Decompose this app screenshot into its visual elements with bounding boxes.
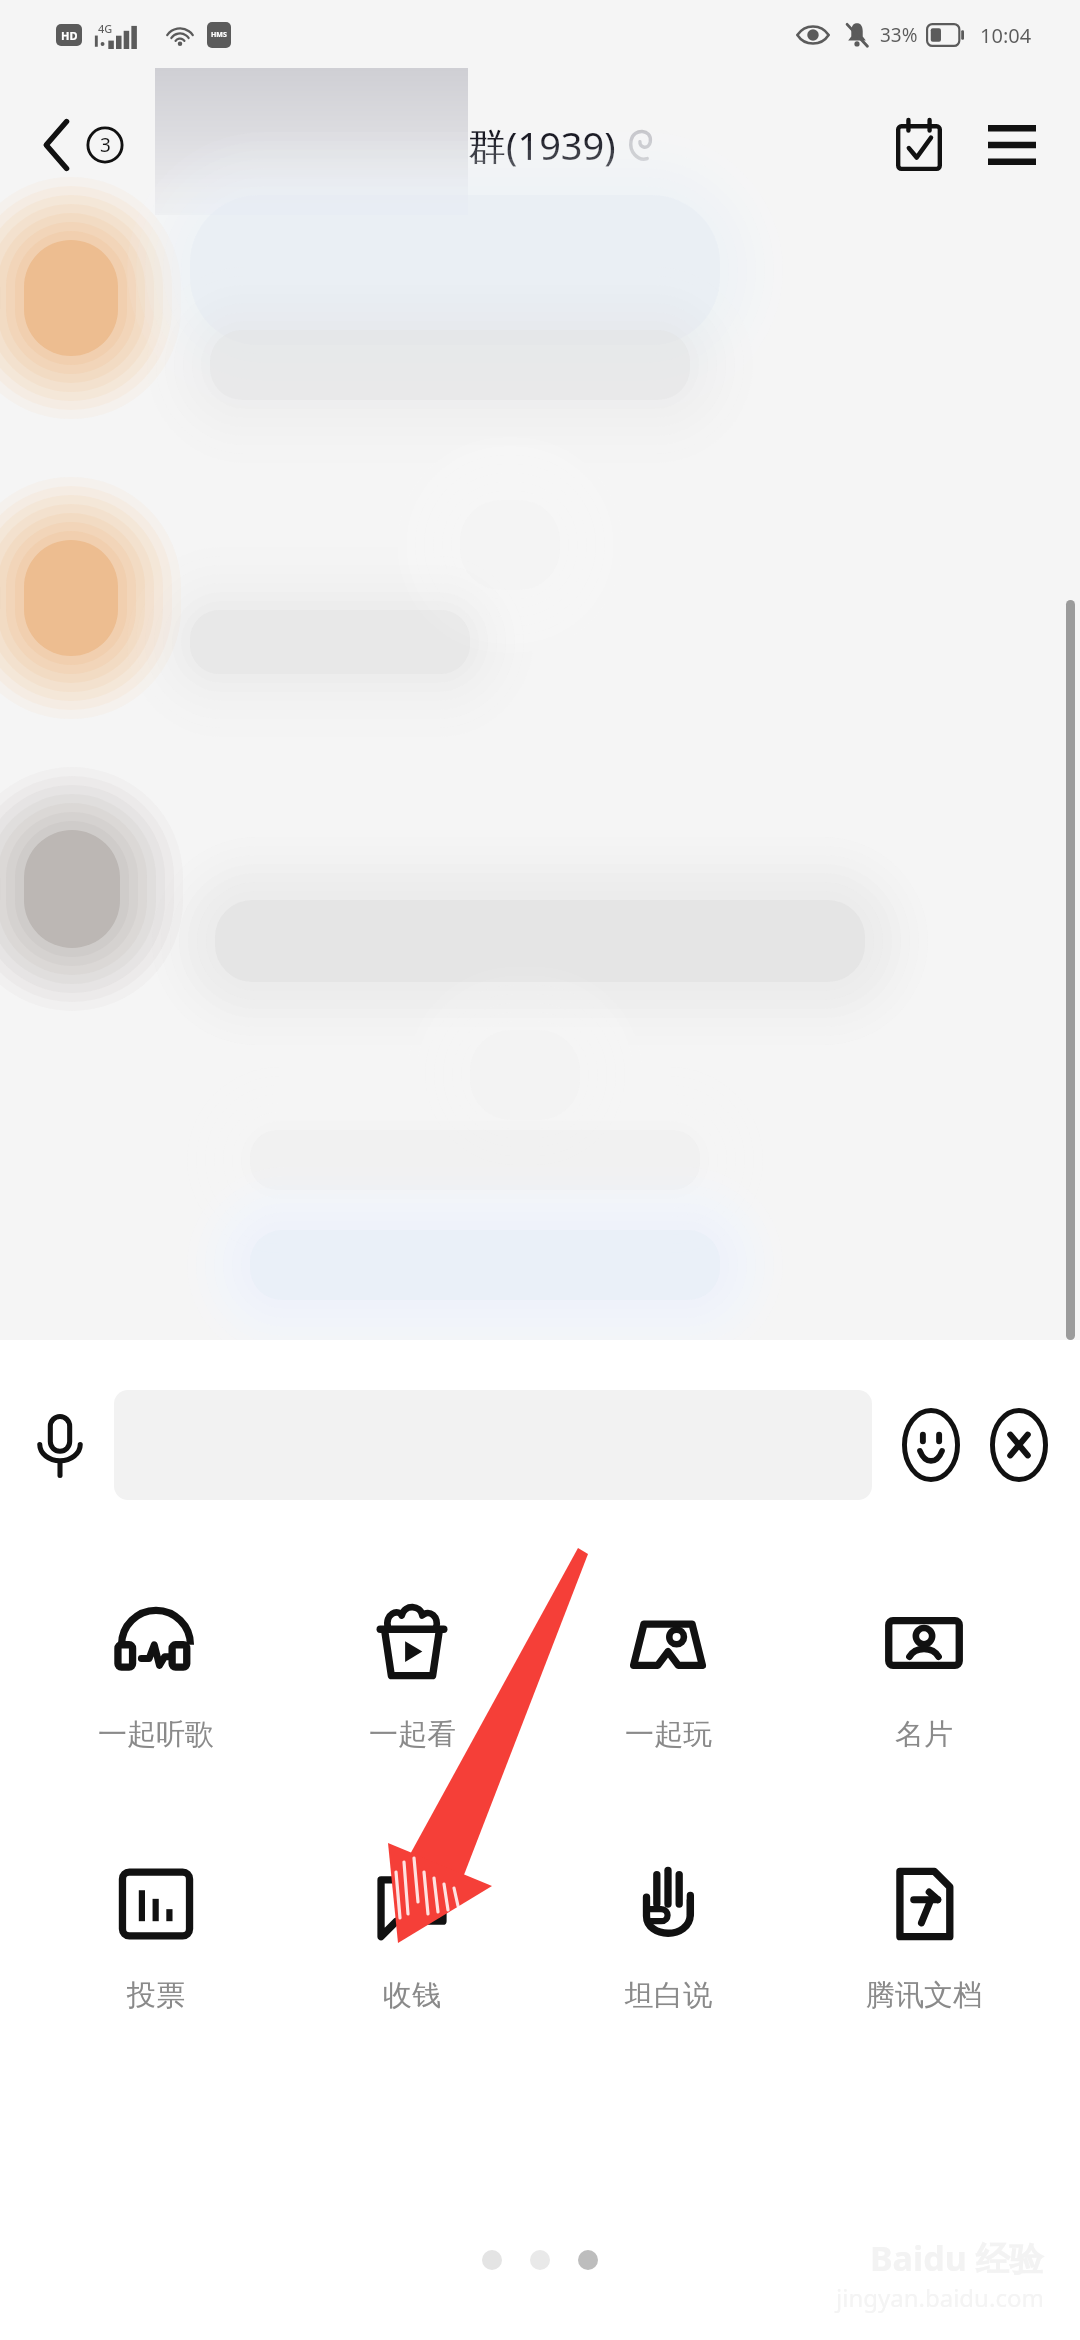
staticText: HD <box>61 28 78 43</box>
staticText: Baidu 经验 <box>870 2235 1044 2281</box>
button[interactable]: 收钱 <box>312 1851 512 2024</box>
staticText: 10:04 <box>980 22 1032 49</box>
button[interactable]: 一起玩 <box>568 1590 768 1763</box>
staticText: 坦白说 <box>625 1977 712 2014</box>
button[interactable]: Tasks <box>882 105 956 185</box>
staticText: 收钱 <box>383 1977 441 2014</box>
button[interactable]: 一起听歌 <box>56 1590 256 1763</box>
staticText: 名片 <box>895 1716 953 1753</box>
staticText: 一起玩 <box>625 1716 712 1753</box>
staticText: 投票 <box>127 1977 185 2014</box>
staticText: 一起听歌 <box>98 1716 214 1753</box>
button[interactable]: Close panel <box>978 1396 1060 1494</box>
staticText: 群(1939) <box>468 119 616 171</box>
staticText: 腾讯文档 <box>866 1977 982 2014</box>
staticText: jingyan.baidu.com <box>836 2281 1044 2314</box>
button[interactable]: 投票 <box>56 1851 256 2024</box>
button[interactable]: Emoji <box>890 1396 972 1494</box>
button[interactable]: Menu <box>974 111 1050 179</box>
staticText: HMS <box>211 30 227 40</box>
staticText: 4G <box>98 21 113 36</box>
button[interactable]: 腾讯文档 <box>824 1851 1024 2024</box>
button[interactable]: Back <box>34 109 132 181</box>
button[interactable]: 一起看 <box>312 1590 512 1763</box>
button[interactable]: Voice message <box>20 1396 100 1494</box>
button[interactable]: 名片 <box>824 1590 1024 1763</box>
staticText: 3 <box>100 132 111 158</box>
staticText: 一起看 <box>369 1716 456 1753</box>
staticText: 33% <box>880 22 918 48</box>
button[interactable]: 坦白说 <box>568 1851 768 2024</box>
